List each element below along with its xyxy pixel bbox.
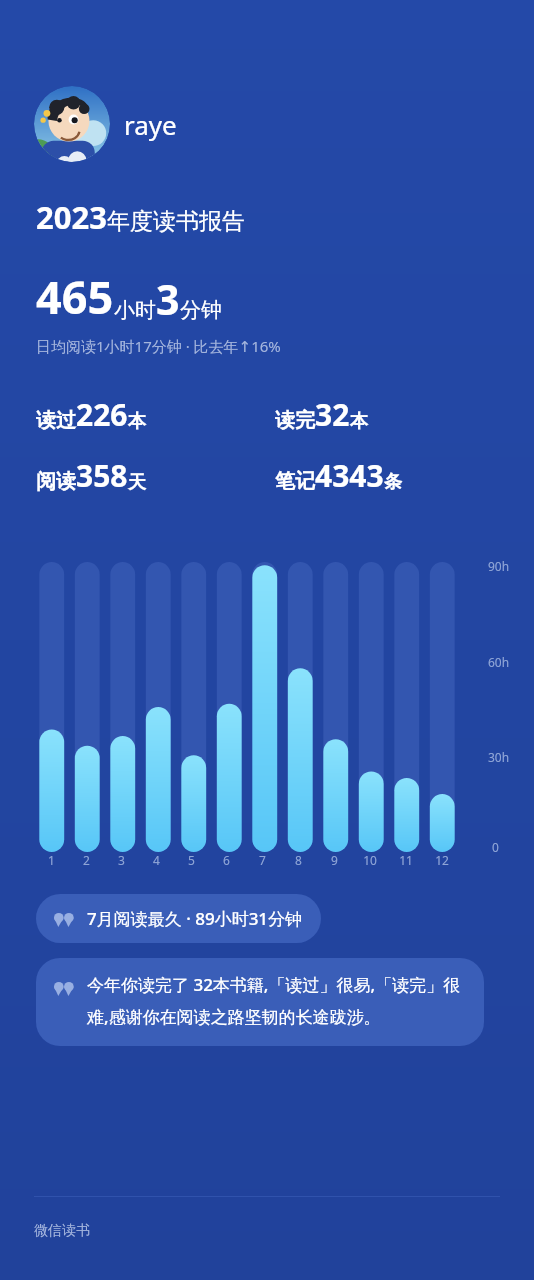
button[interactable]: Profile avatar [34, 86, 177, 162]
staticText: 小时 [114, 297, 156, 323]
staticText: 日均阅读1小时17分钟 · 比去年↑16% [36, 336, 281, 356]
button[interactable]: 7月阅读最久 · 89小时31分钟 [36, 894, 321, 943]
staticText: 10 [363, 852, 377, 868]
staticText: 年度读书报告 [107, 207, 245, 236]
staticText: 阅读 [36, 469, 76, 494]
staticText: raye [124, 107, 177, 142]
button[interactable]: 阅读 [36, 455, 146, 496]
staticText: 60h [488, 654, 510, 670]
staticText: 今年你读完了 32本书籍,「读过」很易,「读完」很难,感谢你在阅读之路坚韧的长途… [87, 973, 470, 1028]
staticText: 358 [76, 455, 128, 496]
button[interactable]: 笔记 [275, 455, 402, 496]
staticText: 2 [83, 852, 90, 868]
staticText: 9 [331, 852, 338, 868]
button[interactable]: 读完 [275, 394, 368, 435]
staticText: 3 [118, 852, 125, 868]
staticText: 笔记 [275, 469, 315, 494]
staticText: 11 [399, 852, 413, 868]
staticText: 4343 [315, 455, 384, 496]
staticText: 读完 [275, 408, 315, 433]
staticText: 226 [76, 394, 128, 435]
other: Profile avatar [34, 86, 110, 162]
staticText: 读过 [36, 408, 76, 433]
staticText: 7 [259, 852, 266, 868]
staticText: 8 [295, 852, 302, 868]
staticText: 分钟 [180, 297, 222, 323]
button[interactable]: 今年你读完了 32本书籍,「读过」很易,「读完」很难,感谢你在阅读之路坚韧的长途… [36, 958, 484, 1046]
staticText: 天 [128, 471, 146, 494]
staticText: 0 [492, 839, 499, 855]
staticText: 7月阅读最久 · 89小时31分钟 [87, 907, 303, 930]
staticText: 4 [153, 852, 160, 868]
staticText: 12 [435, 852, 449, 868]
staticText: 6 [223, 852, 230, 868]
staticText: 30h [488, 749, 510, 765]
staticText: 3 [156, 271, 180, 327]
staticText: 90h [488, 558, 510, 574]
button[interactable]: 读过 [36, 394, 146, 435]
staticText: 1 [48, 852, 55, 868]
staticText: 微信读书 [34, 1222, 90, 1240]
staticText: 5 [188, 852, 195, 868]
staticText: 本 [350, 410, 368, 433]
staticText: 465 [36, 266, 114, 327]
staticText: 32 [315, 394, 350, 435]
staticText: 条 [384, 471, 402, 494]
staticText: 2023 [36, 196, 107, 238]
staticText: 本 [128, 410, 146, 433]
